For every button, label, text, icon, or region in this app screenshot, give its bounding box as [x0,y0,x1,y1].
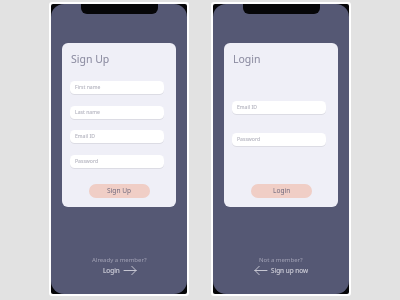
button[interactable]: Password [70,155,164,168]
staticText: First name [75,84,101,91]
staticText: Sign Up [107,186,132,195]
button[interactable]: Sign Up [89,184,150,198]
staticText: Already a member? [92,256,147,264]
staticText: Not a member? [259,256,303,264]
button[interactable]: Login [251,184,312,198]
staticText: Sign up now [271,266,308,275]
button[interactable]: Email ID [232,101,326,114]
button[interactable]: Last name [70,106,164,119]
staticText: Login [103,266,120,275]
staticText: Email ID [237,104,257,111]
button[interactable]: First name [70,81,164,94]
button[interactable]: Email ID [70,130,164,143]
staticText: Last name [75,109,100,116]
other: Go to login [124,266,136,275]
staticText: Password [75,158,99,165]
other: Go to sign up [255,266,267,275]
staticText: Login [233,52,261,66]
staticText: Password [237,136,261,143]
button[interactable]: Login [101,265,138,276]
staticText: Login [273,186,291,195]
staticText: Email ID [75,133,95,140]
staticText: Sign Up [71,52,110,66]
button[interactable]: Go to sign up [253,265,310,276]
button[interactable]: Password [232,133,326,146]
